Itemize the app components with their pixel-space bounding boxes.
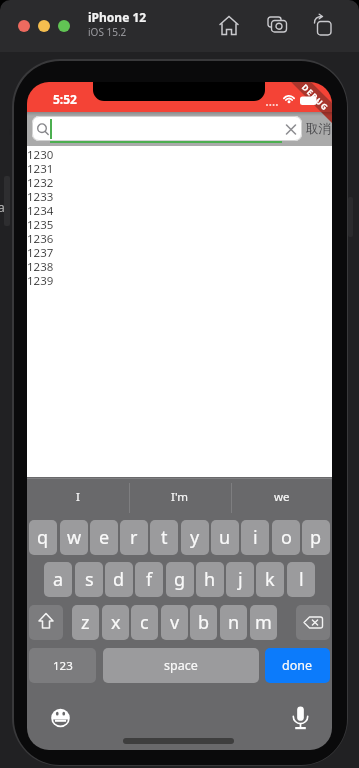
- button[interactable]: 1233: [27, 189, 332, 203]
- staticText: a: [53, 567, 64, 592]
- staticText: 1234: [27, 203, 54, 217]
- staticText: g: [174, 567, 186, 592]
- button[interactable]: I: [27, 484, 128, 510]
- button[interactable]: 1236: [27, 231, 332, 245]
- staticText: s: [85, 567, 94, 592]
- staticText: I'm: [171, 489, 188, 505]
- staticText: b: [198, 610, 210, 635]
- button[interactable]: [38, 20, 50, 32]
- button[interactable]: 1232: [27, 175, 332, 189]
- staticText: 1232: [27, 175, 54, 189]
- button[interactable]: [29, 605, 63, 640]
- staticText: w: [67, 525, 82, 550]
- staticText: d: [113, 567, 125, 592]
- button[interactable]: e: [90, 520, 118, 555]
- button[interactable]: i: [241, 520, 269, 555]
- button[interactable]: n: [220, 605, 247, 640]
- staticText: 1235: [27, 217, 54, 231]
- button[interactable]: 1238: [27, 259, 332, 273]
- button[interactable]: a: [44, 562, 72, 597]
- staticText: z: [81, 610, 90, 635]
- button[interactable]: [296, 605, 330, 640]
- staticText: 1233: [27, 189, 54, 203]
- button[interactable]: g: [166, 562, 194, 597]
- staticText: j: [238, 567, 243, 592]
- button[interactable]: [281, 119, 301, 139]
- button[interactable]: j: [226, 562, 254, 597]
- button[interactable]: k: [256, 562, 284, 597]
- button[interactable]: f: [135, 562, 163, 597]
- button[interactable]: 取消: [305, 120, 331, 138]
- staticText: m: [255, 610, 272, 635]
- staticText: y: [190, 525, 200, 550]
- staticText: r: [130, 525, 138, 550]
- button[interactable]: we: [231, 484, 332, 510]
- button[interactable]: 1231: [27, 161, 332, 175]
- button[interactable]: r: [120, 520, 148, 555]
- staticText: space: [164, 657, 198, 674]
- staticText: q: [37, 525, 49, 550]
- staticText: we: [274, 489, 290, 505]
- button[interactable]: [18, 20, 30, 32]
- staticText: p: [310, 525, 322, 550]
- button[interactable]: 123: [29, 648, 96, 683]
- button[interactable]: d: [105, 562, 133, 597]
- staticText: 1230: [27, 147, 54, 161]
- button[interactable]: u: [211, 520, 239, 555]
- button[interactable]: 1237: [27, 245, 332, 259]
- button[interactable]: t: [150, 520, 178, 555]
- staticText: f: [146, 567, 153, 592]
- staticText: 1236: [27, 231, 54, 245]
- button[interactable]: [265, 14, 289, 38]
- staticText: v: [170, 610, 180, 635]
- staticText: a: [0, 199, 5, 215]
- button[interactable]: [58, 20, 70, 32]
- button[interactable]: q: [29, 520, 57, 555]
- staticText: 取消: [306, 121, 331, 137]
- button[interactable]: [217, 14, 241, 38]
- staticText: o: [281, 525, 292, 550]
- button[interactable]: z: [72, 605, 99, 640]
- staticText: 1237: [27, 245, 54, 259]
- button[interactable]: 1234: [27, 203, 332, 217]
- button[interactable]: b: [190, 605, 217, 640]
- staticText: x: [111, 610, 121, 635]
- button[interactable]: [290, 704, 311, 731]
- button[interactable]: v: [161, 605, 188, 640]
- staticText: u: [219, 525, 231, 550]
- staticText: 1238: [27, 259, 54, 273]
- staticText: iOS 15.2: [88, 25, 127, 39]
- button[interactable]: [32, 116, 302, 141]
- button[interactable]: o: [272, 520, 300, 555]
- button[interactable]: w: [60, 520, 88, 555]
- staticText: h: [204, 567, 216, 592]
- button[interactable]: h: [196, 562, 224, 597]
- button[interactable]: x: [102, 605, 129, 640]
- button[interactable]: [49, 706, 72, 730]
- staticText: DEBUG: [300, 82, 331, 113]
- button[interactable]: done: [265, 648, 330, 683]
- staticText: e: [99, 525, 110, 550]
- staticText: iPhone 12: [88, 9, 147, 25]
- staticText: k: [265, 567, 275, 592]
- staticText: 1231: [27, 161, 54, 175]
- button[interactable]: c: [131, 605, 158, 640]
- button[interactable]: space: [103, 648, 259, 683]
- staticText: i: [253, 525, 258, 550]
- button[interactable]: l: [287, 562, 315, 597]
- button[interactable]: s: [75, 562, 103, 597]
- button[interactable]: y: [181, 520, 209, 555]
- staticText: l: [299, 567, 304, 592]
- staticText: 5:52: [53, 91, 77, 107]
- staticText: n: [228, 610, 240, 635]
- button[interactable]: 1235: [27, 217, 332, 231]
- button[interactable]: 1230: [27, 147, 332, 161]
- button[interactable]: m: [250, 605, 277, 640]
- staticText: c: [140, 610, 149, 635]
- button[interactable]: I'm: [129, 484, 230, 510]
- button[interactable]: 1239: [27, 273, 332, 287]
- staticText: done: [282, 657, 313, 674]
- button[interactable]: p: [302, 520, 330, 555]
- staticText: I: [76, 489, 80, 505]
- button[interactable]: [312, 14, 336, 38]
